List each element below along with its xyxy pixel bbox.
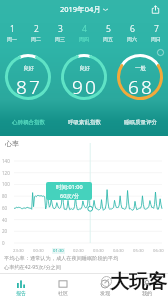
staticText: 40 (2, 217, 8, 223)
staticText: 90 (72, 74, 99, 100)
staticText: 报告 (16, 290, 26, 296)
staticText: 良好 (79, 65, 90, 72)
staticText: 周一 (7, 36, 17, 42)
staticText: 周二 (31, 36, 41, 42)
staticText: 心率约在42-95次/分之间 (4, 263, 61, 270)
staticText: 周六 (127, 36, 137, 42)
button[interactable]: 良好 (0, 46, 56, 108)
staticText: 20 (2, 228, 8, 234)
staticText: 4 (82, 23, 87, 35)
staticText: 05:30 (133, 248, 144, 254)
button[interactable]: 5 (96, 18, 120, 46)
button[interactable]: 良好 (56, 46, 112, 108)
staticText: 140 (2, 158, 10, 164)
staticText: 01:30 (53, 248, 64, 254)
button[interactable]: 2 (24, 18, 48, 46)
staticText: 周四 (79, 36, 89, 42)
staticText: 2019年04月 (60, 4, 101, 14)
button[interactable]: 社区 (42, 274, 84, 300)
staticText: 100 (2, 181, 10, 187)
staticText: 平均心率：通常认为，成人在夜间睡眠阶段的平均 (4, 255, 119, 262)
staticText: 周五 (103, 36, 113, 42)
button[interactable]: 6 (120, 18, 144, 46)
staticText: 5 (106, 23, 111, 35)
staticText: 睡眠质量评分 (124, 119, 157, 126)
staticText: 02:30 (73, 248, 84, 254)
button[interactable]: Help (157, 49, 164, 56)
staticText: 60 (2, 205, 8, 211)
button[interactable]: 报告 (0, 274, 42, 300)
staticText: 心肺耦合指数 (12, 119, 45, 126)
staticText: 心率 (5, 139, 19, 148)
staticText: 周三 (55, 36, 65, 42)
staticText: 04:30 (113, 248, 124, 254)
staticText: 大玩客 (110, 270, 167, 294)
staticText: 良好 (23, 65, 34, 72)
button[interactable]: 4 (72, 18, 96, 46)
staticText: 68 (128, 74, 155, 100)
staticText: 社区 (58, 290, 68, 296)
staticText: 03:30 (93, 248, 104, 254)
staticText: 60次/分 (60, 192, 80, 200)
staticText: 87 (16, 74, 43, 100)
staticText: 80 (2, 193, 8, 199)
staticText: 7 (154, 23, 159, 35)
button[interactable]: 心肺耦合指数 (0, 108, 56, 136)
staticText: 06:30 (153, 248, 164, 254)
staticText: 120 (2, 170, 10, 176)
button[interactable]: 睡眠质量评分 (112, 108, 168, 136)
button[interactable]: 7 (144, 18, 168, 46)
staticText: 0 (2, 240, 5, 246)
button[interactable]: 呼吸紊乱指数 (56, 108, 112, 136)
staticText: 00:30 (33, 248, 44, 254)
staticText: 6 (130, 23, 135, 35)
button[interactable]: 我的 (126, 274, 168, 300)
staticText: 3 (58, 23, 63, 35)
button[interactable]: 一般 (112, 46, 168, 108)
button[interactable]: 2019年04月 (60, 4, 108, 14)
staticText: 23:30 (13, 248, 24, 254)
staticText: 呼吸紊乱指数 (68, 119, 101, 126)
button[interactable]: 3 (48, 18, 72, 46)
staticText: 一般 (135, 65, 146, 72)
button[interactable]: Share (150, 4, 161, 15)
button[interactable]: 1 (0, 18, 24, 46)
staticText: 时间:01:00 (56, 183, 83, 191)
staticText: 2 (34, 23, 39, 35)
button[interactable]: 发现 (84, 274, 126, 300)
staticText: 发现 (100, 290, 110, 296)
staticText: 我的 (142, 290, 152, 296)
staticText: 周日 (151, 36, 161, 42)
staticText: 1 (10, 23, 15, 35)
